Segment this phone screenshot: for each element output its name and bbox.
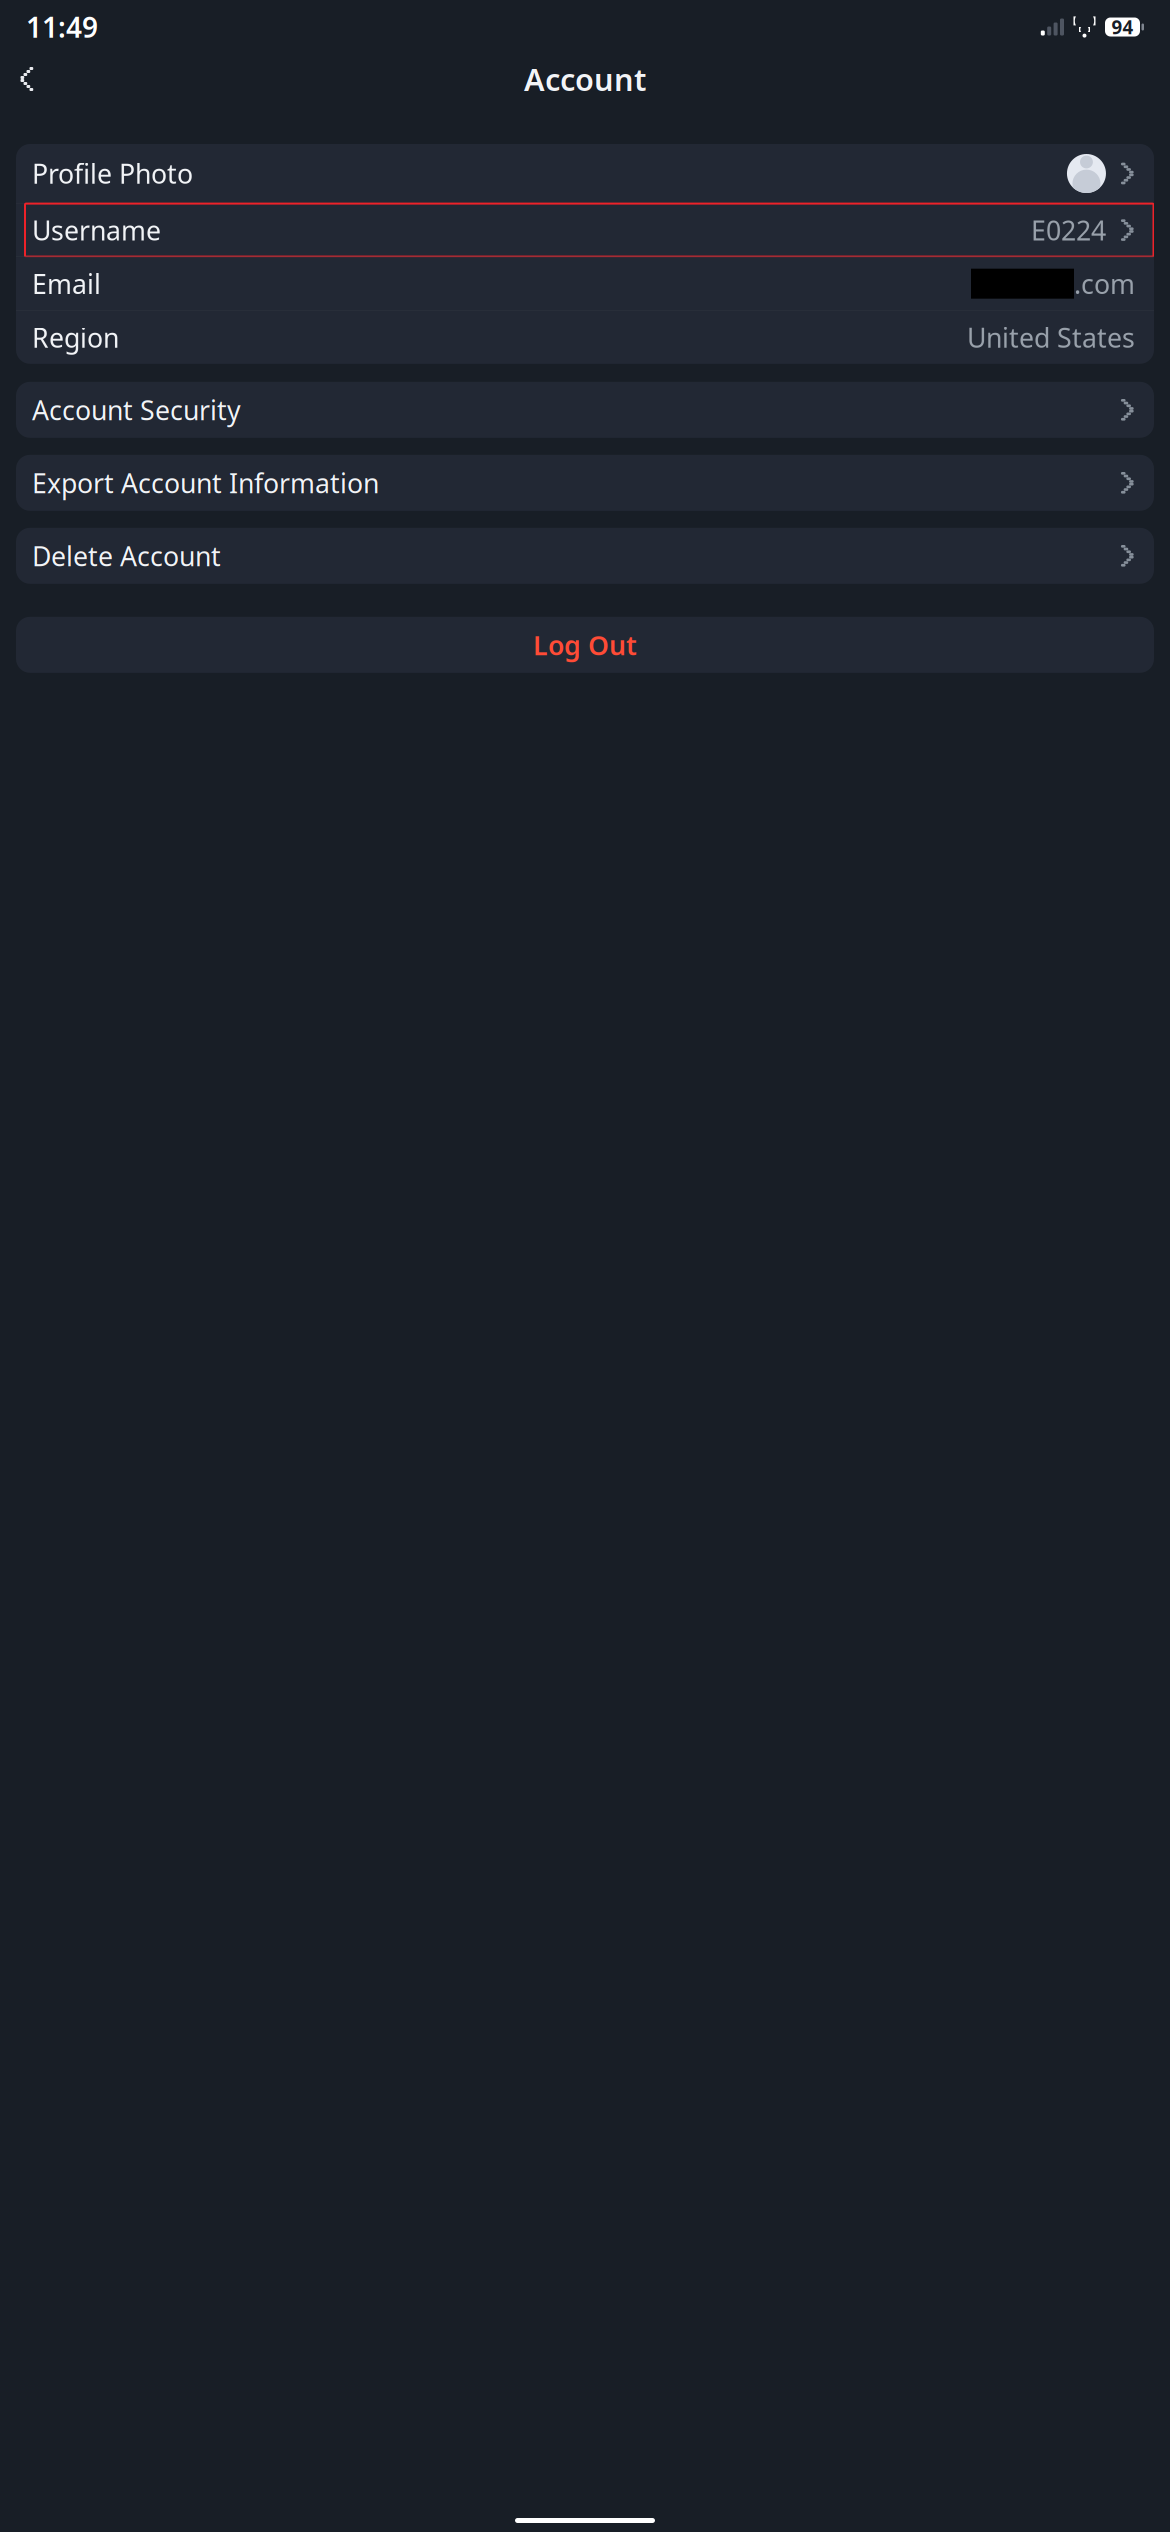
staticText: Delete Account: [32, 538, 221, 573]
staticText: United States: [967, 320, 1135, 355]
button[interactable]: Delete Account: [16, 528, 1154, 584]
button[interactable]: Export Account Information: [16, 455, 1154, 511]
staticText: .com: [1074, 266, 1135, 301]
staticText: Region: [32, 320, 119, 355]
button[interactable]: Username: [16, 204, 1154, 257]
staticText: Username: [32, 212, 161, 248]
staticText: 94: [1111, 15, 1133, 39]
button[interactable]: Email: [16, 257, 1154, 310]
staticText: Account Security: [32, 392, 241, 427]
staticText: 11:49: [26, 8, 98, 46]
staticText: Profile Photo: [32, 156, 193, 191]
staticText: Account: [524, 59, 646, 99]
button[interactable]: Account Security: [16, 382, 1154, 438]
staticText: Export Account Information: [32, 465, 379, 500]
staticText: Log Out: [533, 627, 637, 662]
button[interactable]: Region: [16, 311, 1154, 364]
staticText: Email: [32, 266, 101, 301]
button[interactable]: Profile Photo: [16, 144, 1154, 203]
button[interactable]: Log Out: [16, 617, 1154, 673]
button[interactable]: Back: [6, 57, 50, 101]
staticText: E0224: [1031, 212, 1106, 248]
